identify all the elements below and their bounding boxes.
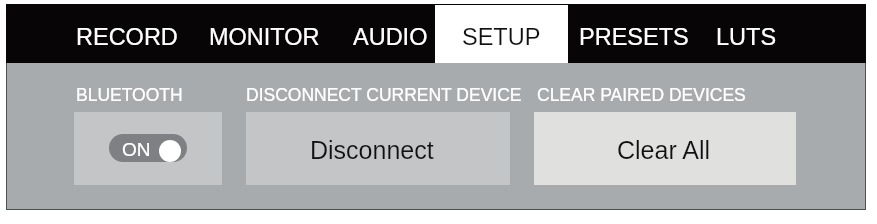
staticText: PRESETS [579, 24, 689, 50]
staticText: DISCONNECT CURRENT DEVICE [246, 85, 522, 105]
staticText: CLEAR PAIRED DEVICES [537, 85, 746, 105]
button[interactable]: Clear All [534, 112, 796, 185]
staticText: RECORD [76, 24, 178, 50]
staticText: AUDIO [353, 24, 428, 50]
staticText: BLUETOOTH [76, 85, 183, 105]
button[interactable]: LUTS [702, 4, 866, 63]
button[interactable]: PRESETS [568, 4, 702, 63]
button[interactable]: SETUP [435, 4, 568, 63]
button[interactable]: MONITOR [194, 4, 336, 63]
button[interactable]: AUDIO [336, 4, 435, 63]
staticText: Disconnect [310, 136, 434, 164]
button[interactable]: Disconnect [246, 112, 510, 185]
staticText: Clear All [617, 136, 711, 164]
button[interactable]: Bluetooth, on [74, 112, 222, 185]
staticText: MONITOR [209, 24, 320, 50]
staticText: SETUP [462, 24, 541, 50]
button[interactable]: RECORD [6, 4, 194, 63]
staticText: ON [122, 139, 151, 160]
staticText: LUTS [716, 24, 777, 50]
